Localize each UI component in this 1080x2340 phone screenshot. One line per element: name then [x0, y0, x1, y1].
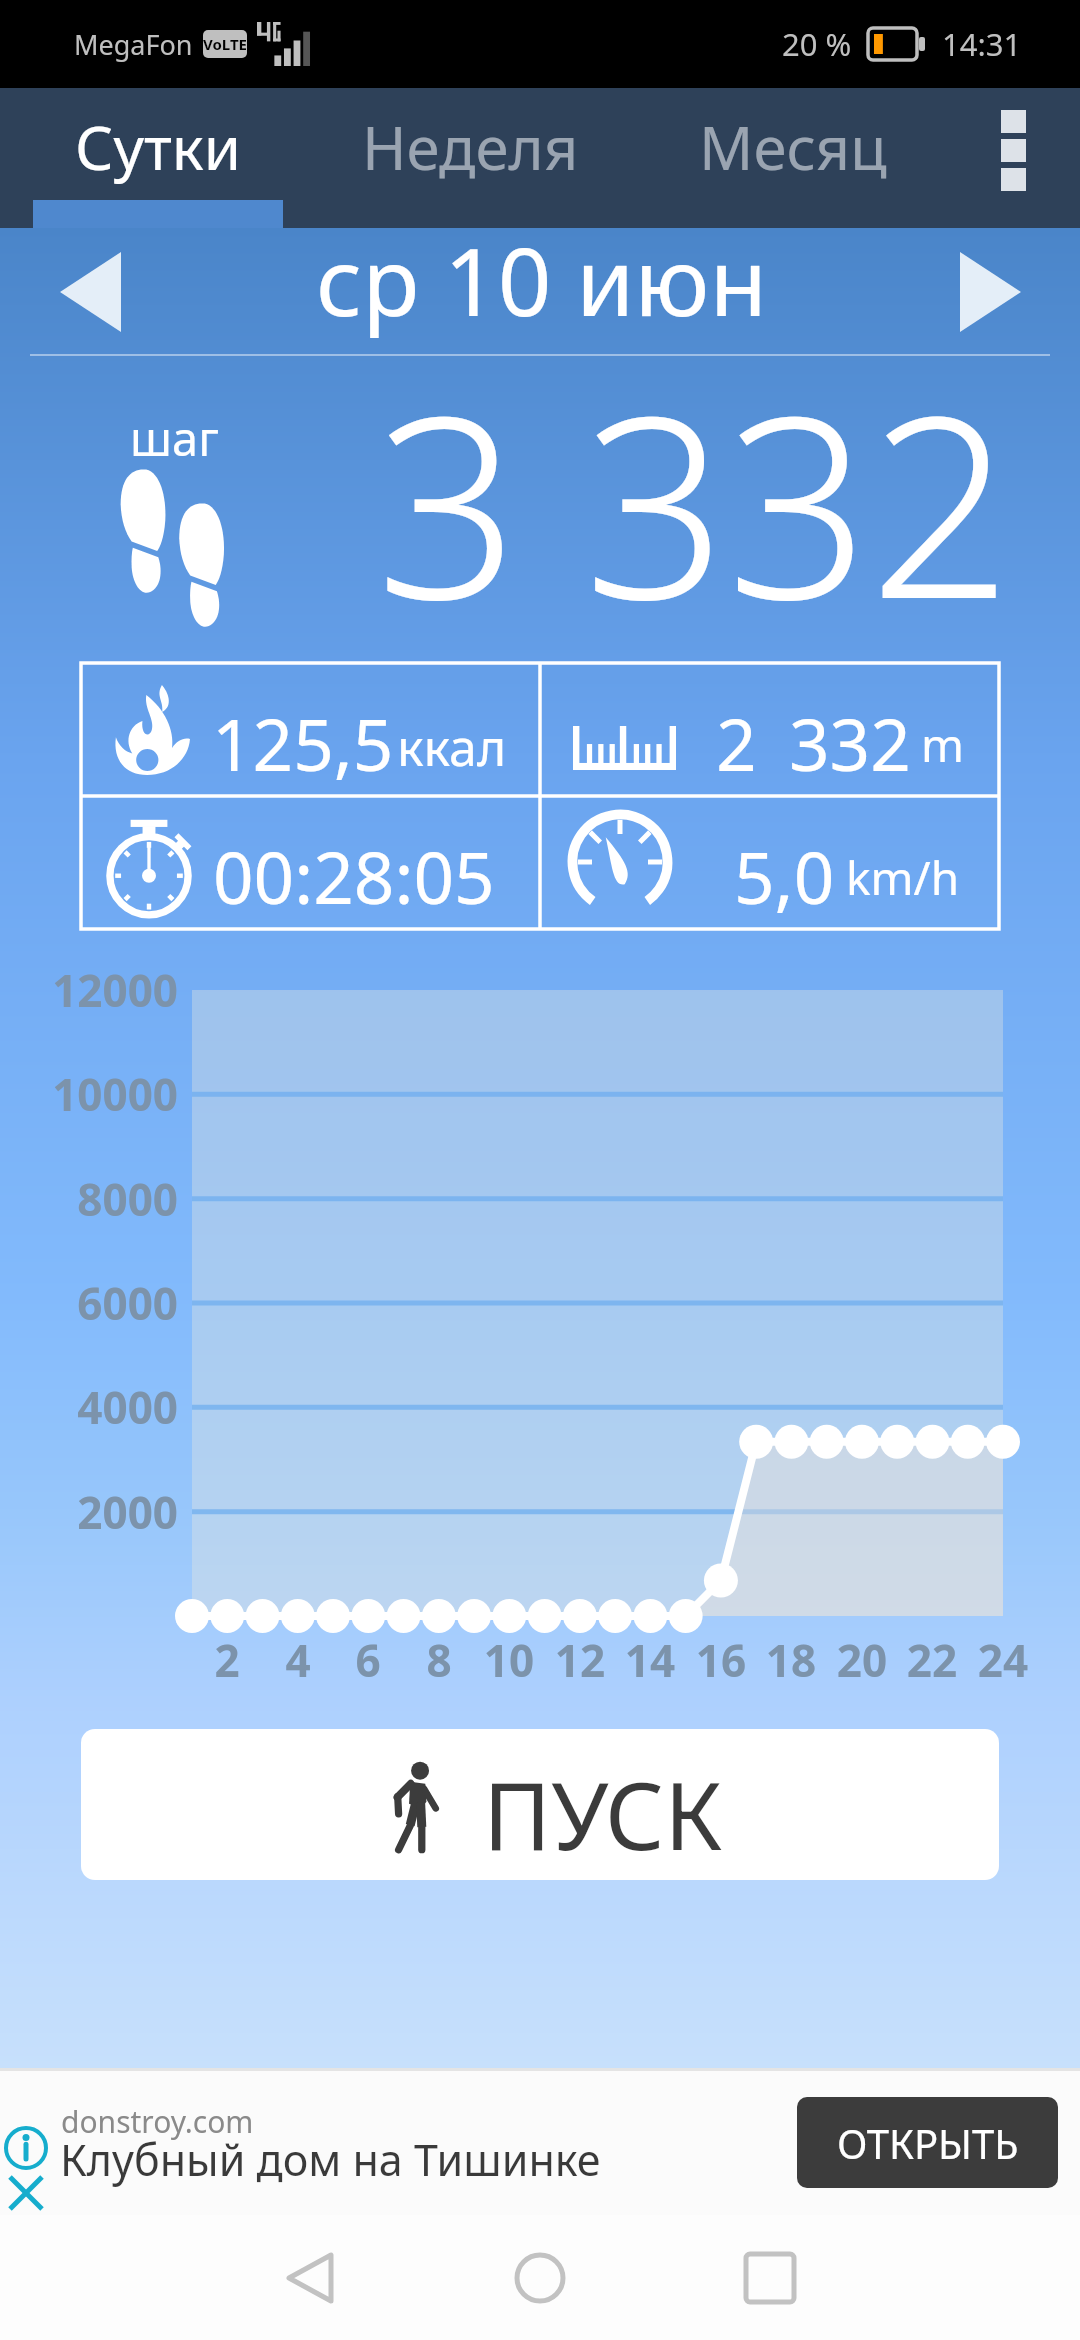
staticText: 18 [741, 1630, 841, 1690]
button[interactable]: Home [480, 2218, 600, 2338]
staticText: MegaFon [74, 26, 193, 63]
staticText: Сутки [75, 106, 241, 188]
button[interactable]: Ad info [2, 2124, 50, 2172]
button[interactable]: Неделя [345, 88, 595, 228]
staticText: VoLTE [203, 34, 247, 54]
button[interactable]: 2 [540, 663, 999, 796]
staticText: 10 [459, 1630, 559, 1690]
staticText: km/h [846, 846, 960, 909]
staticText: 4000 [0, 1377, 178, 1437]
button[interactable]: 125,5 [81, 663, 540, 796]
staticText: 2 [177, 1630, 277, 1690]
staticText: 20 [812, 1630, 912, 1690]
staticText: ср 10 июн [316, 216, 768, 344]
staticText: Неделя [362, 106, 579, 188]
staticText: ккал [397, 713, 507, 781]
staticText: шаг [130, 406, 219, 470]
staticText: m [921, 713, 965, 776]
button[interactable]: Next day [940, 242, 1040, 342]
staticText: 125,5 [212, 695, 394, 792]
staticText: 2000 [0, 1482, 178, 1542]
staticText: 3 332 [376, 331, 1012, 672]
staticText: donstroy.com [61, 2101, 254, 2142]
button[interactable]: Previous day [40, 242, 140, 342]
button[interactable]: Месяц [668, 88, 918, 228]
staticText: 22 [882, 1630, 982, 1690]
staticText: 4 [248, 1630, 348, 1690]
staticText: 20 % [782, 23, 852, 65]
staticText: Клубный дом на Тишинке [60, 2130, 601, 2189]
button[interactable]: ПУСК [81, 1729, 999, 1880]
staticText: 6 [318, 1630, 418, 1690]
staticText: 16 [671, 1630, 771, 1690]
staticText: ПУСК [483, 1751, 723, 1878]
staticText: 2 [716, 695, 757, 792]
button[interactable]: Recents [710, 2218, 830, 2338]
staticText: 12 [530, 1630, 630, 1690]
staticText: 12000 [0, 960, 178, 1020]
staticText: 00:28:05 [213, 828, 495, 925]
button[interactable]: 5,0 [540, 796, 999, 929]
staticText: 5,0 [734, 828, 835, 925]
button[interactable]: More options [960, 88, 1066, 228]
button[interactable]: Close ad [3, 2170, 49, 2216]
staticText: 8000 [0, 1169, 178, 1229]
staticText: ОТКРЫТЬ [837, 2116, 1019, 2170]
staticText: 332 [789, 695, 911, 792]
button[interactable]: 00:28:05 [81, 796, 540, 929]
button[interactable]: ОТКРЫТЬ [797, 2097, 1058, 2188]
staticText: 14:31 [942, 23, 1022, 65]
staticText: Месяц [699, 106, 887, 188]
button[interactable]: Сутки [33, 88, 283, 228]
button[interactable]: Back [250, 2218, 370, 2338]
staticText: 14 [600, 1630, 700, 1690]
staticText: 10000 [0, 1064, 178, 1124]
staticText: 24 [953, 1630, 1053, 1690]
staticText: 8 [389, 1630, 489, 1690]
staticText: 6000 [0, 1273, 178, 1333]
